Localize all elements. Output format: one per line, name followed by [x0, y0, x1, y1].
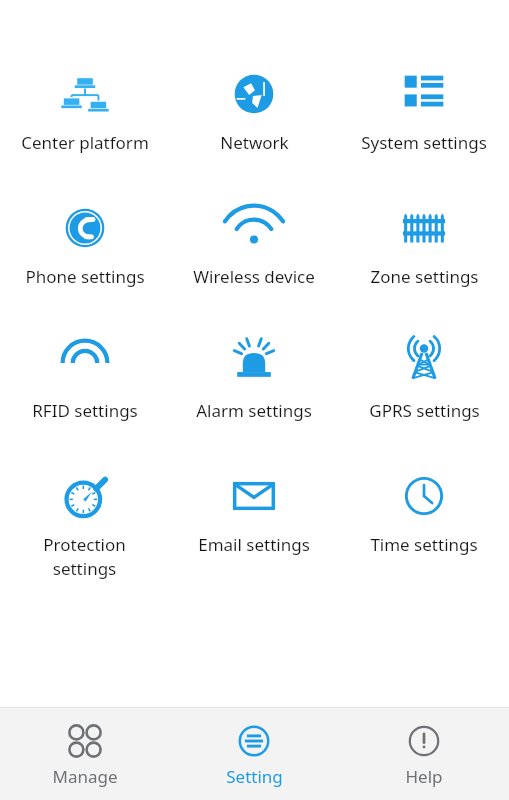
button[interactable]: Email settings [169, 466, 339, 558]
button[interactable]: Zone settings [339, 198, 509, 290]
staticText: Setting [226, 765, 283, 788]
staticText: Zone settings [370, 265, 479, 288]
staticText: Center platform [21, 131, 149, 154]
button[interactable]: Protection settings [0, 466, 169, 582]
button[interactable]: Network [169, 64, 339, 156]
staticText: Manage [52, 765, 118, 788]
staticText: Email settings [198, 533, 310, 556]
staticText: Wireless device [193, 265, 315, 288]
staticText: Alarm settings [196, 399, 312, 422]
staticText: RFID settings [32, 399, 138, 422]
button[interactable]: Wireless device [169, 198, 339, 290]
button[interactable]: System settings [339, 64, 509, 156]
staticText: GPRS settings [369, 399, 480, 422]
button[interactable]: Help [339, 708, 509, 800]
staticText: Help [405, 765, 443, 788]
staticText: Time settings [370, 533, 478, 556]
staticText: System settings [361, 131, 487, 154]
button[interactable]: Manage [0, 708, 169, 800]
button[interactable]: Setting [169, 708, 339, 800]
button[interactable]: GPRS settings [339, 332, 509, 424]
button[interactable]: Phone settings [0, 198, 169, 290]
staticText: Protection settings [43, 533, 126, 580]
button[interactable]: Alarm settings [169, 332, 339, 424]
staticText: Phone settings [25, 265, 145, 288]
button[interactable]: Center platform [0, 64, 169, 156]
button[interactable]: Time settings [339, 466, 509, 558]
staticText: Network [220, 131, 289, 154]
button[interactable]: RFID settings [0, 332, 169, 424]
